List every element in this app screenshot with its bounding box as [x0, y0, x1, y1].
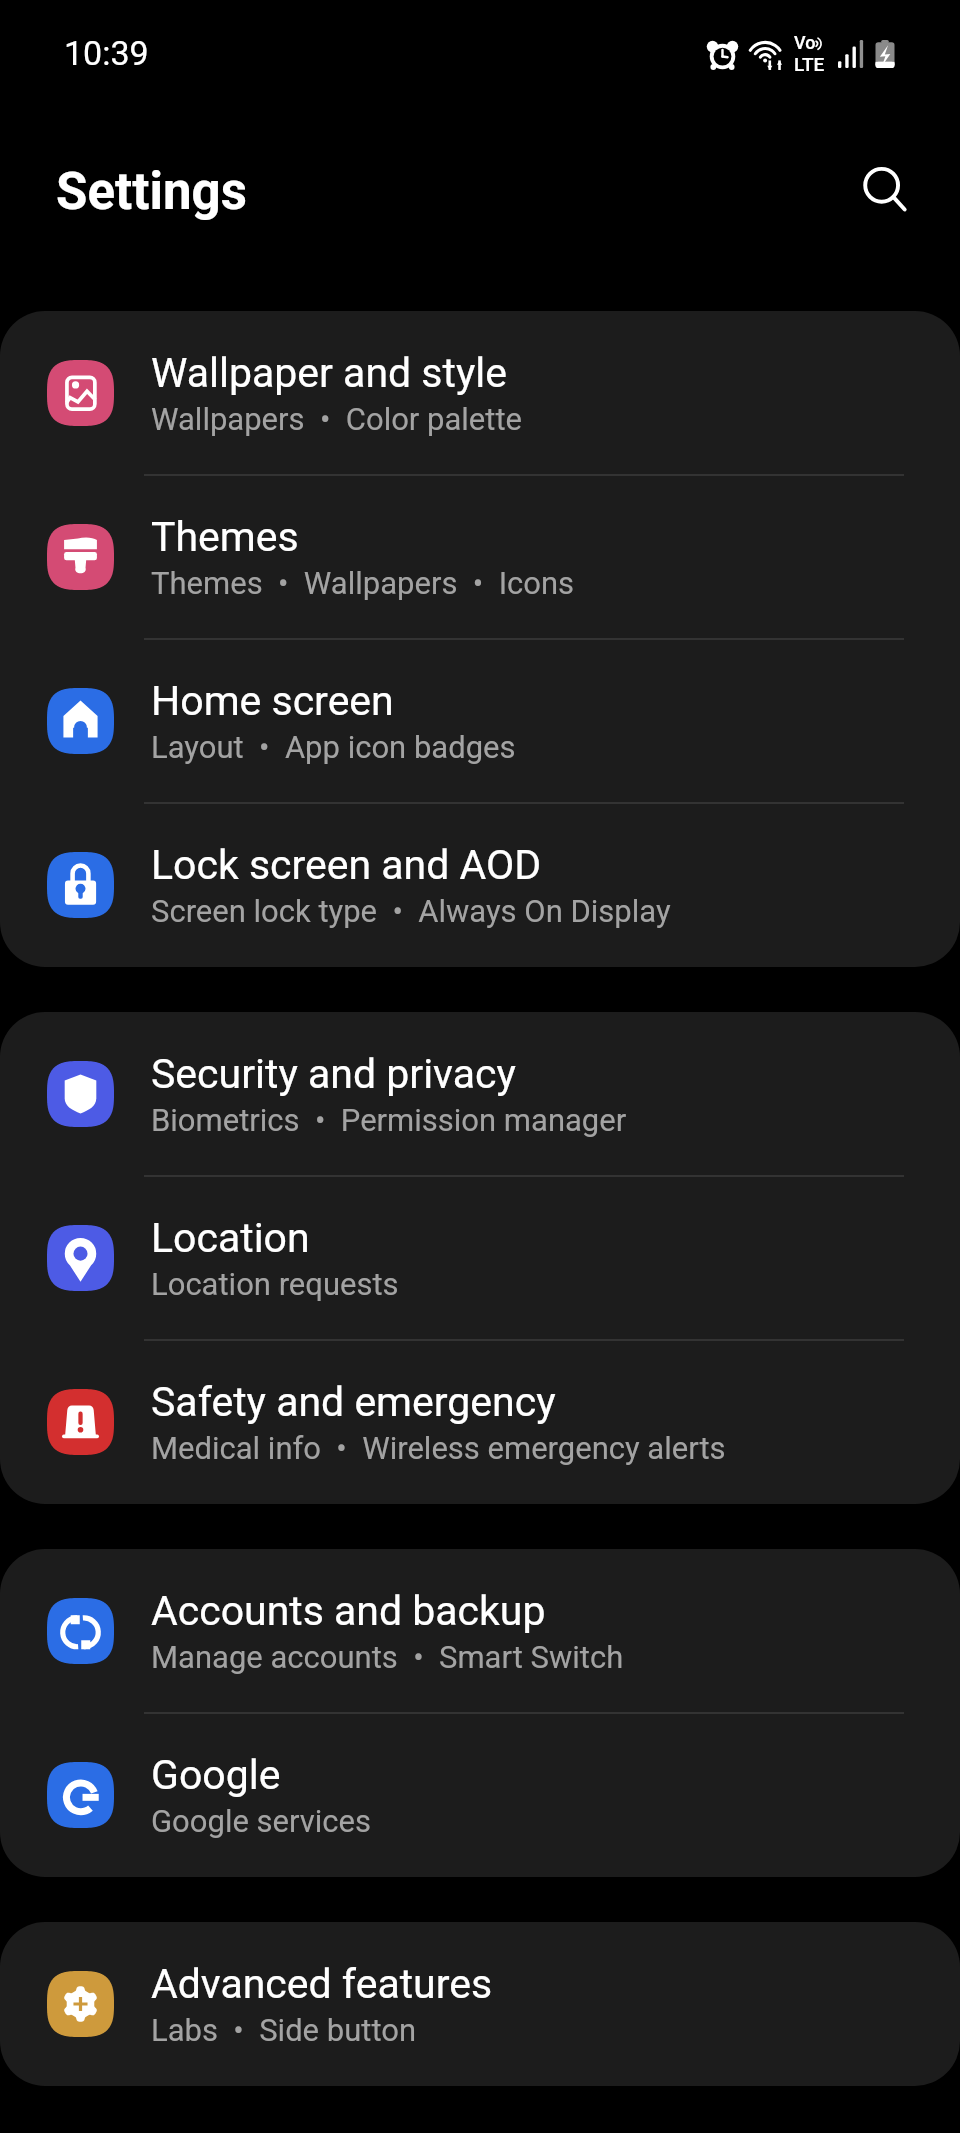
staticText: Accounts and backup	[151, 1587, 546, 1635]
staticText: Google	[151, 1751, 281, 1799]
staticText: Location requests	[151, 1266, 399, 1302]
staticText: Security and privacy	[151, 1050, 516, 1098]
staticText: Location	[151, 1214, 310, 1262]
button[interactable]: Safety and emergency	[0, 1340, 960, 1504]
button[interactable]: Advanced features	[0, 1922, 960, 2086]
button[interactable]: Accounts and backup	[0, 1549, 960, 1713]
staticText: Themes	[151, 513, 299, 561]
staticText: Medical info • Wireless emergency alerts	[151, 1430, 726, 1466]
staticText: Wallpaper and style	[151, 349, 508, 397]
staticText: Safety and emergency	[151, 1378, 556, 1426]
button[interactable]: Search	[843, 150, 927, 234]
staticText: Settings	[56, 162, 247, 222]
button[interactable]: Wallpaper and style	[0, 311, 960, 475]
staticText: Wallpapers • Color palette	[151, 401, 523, 437]
staticText: 10:39	[64, 33, 149, 73]
button[interactable]: Security and privacy	[0, 1012, 960, 1176]
button[interactable]: Google	[0, 1713, 960, 1877]
staticText: Labs • Side button	[151, 2012, 417, 2048]
button[interactable]: Home screen	[0, 639, 960, 803]
button[interactable]: Themes	[0, 475, 960, 639]
staticText: Biometrics • Permission manager	[151, 1102, 627, 1138]
staticText: Lock screen and AOD	[151, 841, 542, 889]
staticText: Advanced features	[151, 1960, 493, 2008]
staticText: Screen lock type • Always On Display	[151, 893, 671, 929]
button[interactable]: Location	[0, 1176, 960, 1340]
staticText: Google services	[151, 1803, 371, 1839]
button[interactable]: Lock screen and AOD	[0, 803, 960, 967]
staticText: Vo	[794, 32, 816, 53]
staticText: Home screen	[151, 677, 394, 725]
staticText: Manage accounts • Smart Switch	[151, 1639, 624, 1675]
staticText: LTE	[794, 53, 825, 75]
staticText: Layout • App icon badges	[151, 729, 516, 765]
staticText: Themes • Wallpapers • Icons	[151, 565, 575, 601]
